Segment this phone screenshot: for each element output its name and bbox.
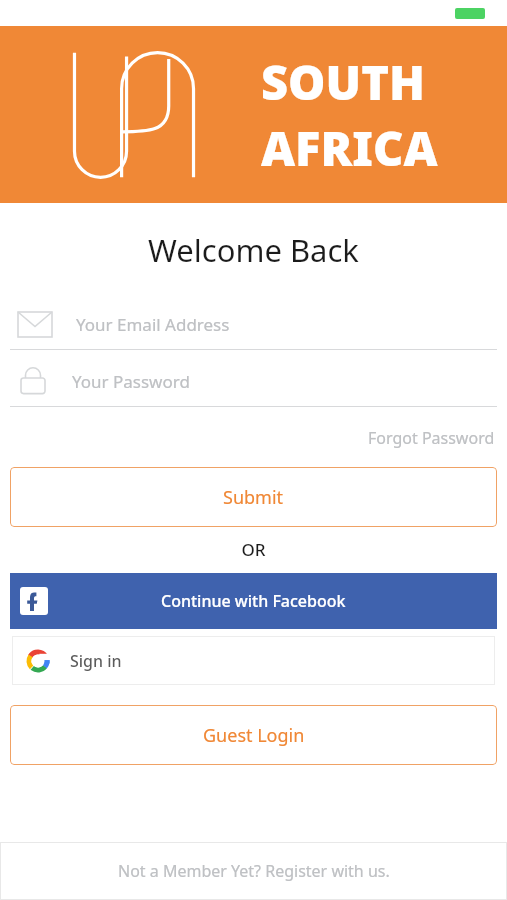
button[interactable]: Forgot Password	[366, 423, 497, 453]
staticText: Welcome Back	[0, 229, 507, 271]
button[interactable]: Password	[0, 358, 507, 404]
staticText: SOUTH	[261, 50, 425, 114]
button[interactable]: Guest Login	[10, 705, 497, 765]
staticText: Your Email Address	[76, 313, 230, 336]
staticText: Not a Member Yet? Register with us.	[118, 860, 390, 882]
button[interactable]: Continue with Facebook	[10, 573, 497, 629]
other: Sign in with Google	[26, 649, 50, 673]
staticText: Guest Login	[203, 723, 305, 748]
button[interactable]: Sign in with Google	[12, 636, 495, 685]
staticText: Submit	[223, 485, 284, 510]
staticText: Forgot Password	[368, 427, 495, 449]
staticText: Continue with Facebook	[161, 590, 346, 612]
button[interactable]: Email	[0, 301, 507, 347]
staticText: AFRICA	[261, 116, 438, 180]
other: Email	[18, 312, 52, 337]
staticText: Your Password	[72, 370, 190, 393]
button[interactable]: Submit	[10, 467, 497, 527]
staticText: OR	[0, 538, 507, 561]
other: Continue with Facebook	[17, 584, 51, 618]
button[interactable]: Not a Member Yet? Register with us.	[0, 842, 507, 900]
staticText: Sign in	[70, 650, 122, 672]
other: Password	[18, 366, 48, 396]
